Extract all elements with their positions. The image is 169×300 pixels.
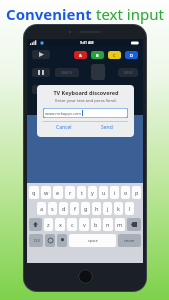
button[interactable]: x [55, 218, 65, 231]
staticText: SEARCH [61, 71, 73, 75]
button[interactable]: v [79, 218, 89, 231]
staticText: Enter your text and press Send. [55, 98, 117, 104]
staticText: y [91, 189, 94, 196]
button[interactable]: D-pad [91, 64, 105, 80]
button[interactable]: u [99, 186, 108, 199]
staticText: Convenient [6, 4, 92, 24]
button[interactable]: k [114, 202, 123, 215]
button[interactable]: l [125, 202, 134, 215]
staticText: s [51, 205, 54, 212]
button[interactable]: www.mrkapps.com [43, 108, 128, 118]
staticText: r [69, 189, 72, 196]
button[interactable]: d [59, 202, 68, 215]
button[interactable]: w [41, 186, 51, 199]
button[interactable]: Shift [29, 218, 42, 231]
staticText: l [129, 205, 131, 212]
button[interactable]: g [81, 202, 90, 215]
button[interactable]: s [48, 202, 57, 215]
staticText: g [84, 205, 88, 212]
button[interactable]: z [44, 218, 53, 231]
staticText: 9:41 AM [80, 40, 94, 45]
button[interactable]: p [132, 186, 141, 199]
button[interactable]: h [92, 202, 101, 215]
button[interactable]: space [69, 234, 116, 247]
staticText: space [88, 238, 98, 243]
staticText: w [44, 189, 49, 196]
button[interactable]: n [103, 218, 113, 231]
button[interactable]: Cancel [43, 122, 85, 133]
button[interactable]: a [37, 202, 46, 215]
button[interactable]: j [103, 202, 112, 215]
staticText: o [124, 189, 128, 196]
staticText: D [130, 53, 133, 58]
staticText: f [74, 205, 76, 212]
button[interactable]: Remote key [32, 50, 50, 59]
button[interactable]: Remote key [32, 85, 50, 94]
button[interactable]: Remote key [32, 68, 50, 77]
staticText: h [95, 205, 99, 212]
button[interactable]: A [74, 51, 87, 59]
button[interactable]: m [115, 218, 125, 231]
button[interactable]: D [125, 51, 138, 59]
button[interactable]: b [91, 218, 101, 231]
staticText: TV Keyboard discovered [53, 89, 119, 96]
button[interactable]: q [29, 186, 39, 199]
button[interactable]: B [91, 51, 104, 59]
staticText: q [32, 189, 36, 196]
staticText: text input [96, 4, 164, 24]
button[interactable]: t [77, 186, 86, 199]
button[interactable]: Remote key [118, 68, 138, 77]
button[interactable]: Backspace [127, 218, 141, 231]
staticText: v [83, 221, 86, 228]
staticText: p [135, 189, 139, 196]
staticText: return [124, 238, 135, 243]
button[interactable]: Send [85, 122, 128, 133]
button[interactable]: r [65, 186, 75, 199]
button[interactable]: e [53, 186, 63, 199]
staticText: i [114, 189, 116, 196]
staticText: j [107, 205, 109, 212]
button[interactable]: o [121, 186, 130, 199]
button[interactable]: Numbers [29, 234, 43, 247]
staticText: C [113, 53, 116, 58]
button[interactable]: Remote key [55, 68, 79, 77]
button[interactable]: Return [118, 234, 141, 247]
staticText: d [62, 205, 66, 212]
staticText: a [40, 205, 44, 212]
staticText: 123 [33, 238, 40, 243]
button[interactable]: Dictate [57, 234, 67, 247]
staticText: B [96, 53, 99, 58]
staticText: n [106, 221, 110, 228]
button[interactable]: y [88, 186, 97, 199]
staticText: x [59, 221, 62, 228]
staticText: A [79, 53, 82, 58]
staticText: m [117, 221, 123, 228]
staticText: t [81, 189, 83, 196]
staticText: c [71, 221, 74, 228]
button[interactable]: C [108, 51, 121, 59]
button[interactable]: c [67, 218, 77, 231]
staticText: z [47, 221, 50, 228]
staticText: e [56, 189, 60, 196]
staticText: k [117, 205, 120, 212]
button[interactable]: Emoji [45, 234, 55, 247]
staticText: Cancel [56, 124, 72, 131]
staticText: MENU [124, 71, 133, 75]
button[interactable]: i [110, 186, 119, 199]
staticText: u [102, 189, 106, 196]
staticText: Send [101, 124, 113, 131]
staticText: www.mrkapps.com [45, 111, 82, 116]
button[interactable]: f [70, 202, 79, 215]
staticText: b [94, 221, 98, 228]
